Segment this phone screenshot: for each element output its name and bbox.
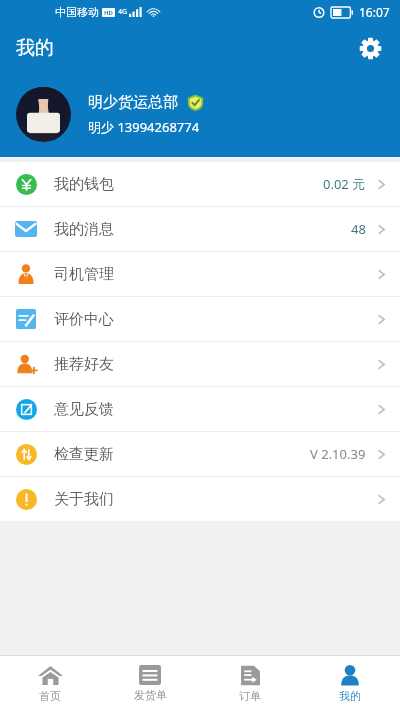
staticText: 检查更新 [54, 445, 114, 464]
button[interactable]: 我的钱包 [0, 162, 400, 206]
staticText: 我的 [339, 689, 361, 703]
button[interactable]: 检查更新 [0, 432, 400, 476]
button[interactable]: 推荐好友 [0, 342, 400, 386]
staticText: 明少货运总部 [88, 93, 178, 112]
button[interactable]: 我的 [300, 656, 400, 711]
staticText: 0.02 元 [323, 175, 366, 193]
staticText: HD [104, 9, 113, 17]
staticText: 4G [118, 7, 128, 17]
button[interactable]: 评价中心 [0, 297, 400, 341]
button[interactable]: 关于我们 [0, 477, 400, 521]
button[interactable]: 明少货运总部 [0, 72, 400, 157]
staticText: 48 [351, 220, 366, 238]
staticText: 发货单 [134, 688, 167, 702]
button[interactable]: Settings [350, 28, 390, 68]
staticText: 订单 [239, 689, 261, 703]
button[interactable]: 发货单 [100, 656, 200, 711]
staticText: 16:07 [359, 4, 390, 20]
staticText: 意见反馈 [54, 400, 114, 419]
staticText: 司机管理 [54, 265, 114, 284]
staticText: 首页 [39, 689, 61, 703]
button[interactable]: 首页 [0, 656, 100, 711]
staticText: V 2.10.39 [310, 445, 366, 463]
staticText: 中国移动 [55, 5, 99, 19]
staticText: 关于我们 [54, 490, 114, 509]
button[interactable]: 我的消息 [0, 207, 400, 251]
button[interactable]: 司机管理 [0, 252, 400, 296]
staticText: 我的 [16, 36, 54, 60]
staticText: 推荐好友 [54, 355, 114, 374]
button[interactable]: 订单 [200, 656, 300, 711]
staticText: 我的钱包 [54, 175, 114, 194]
staticText: 我的消息 [54, 220, 114, 239]
button[interactable]: 意见反馈 [0, 387, 400, 431]
staticText: 评价中心 [54, 310, 114, 329]
staticText: 明少 13994268774 [88, 118, 200, 136]
